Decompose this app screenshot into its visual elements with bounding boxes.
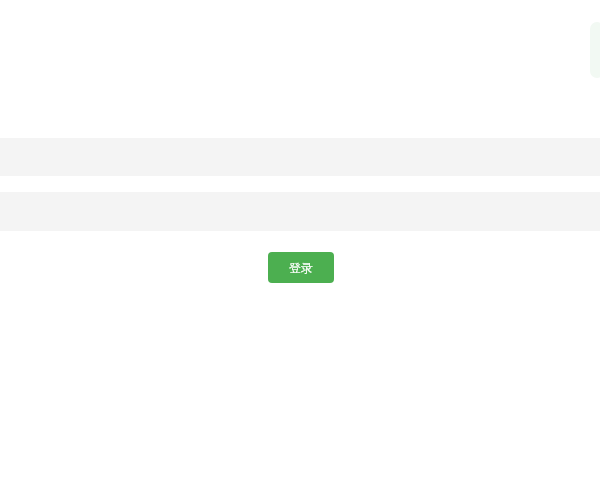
staticText: 登录 bbox=[289, 260, 313, 275]
button[interactable]: 登录 bbox=[268, 252, 334, 283]
